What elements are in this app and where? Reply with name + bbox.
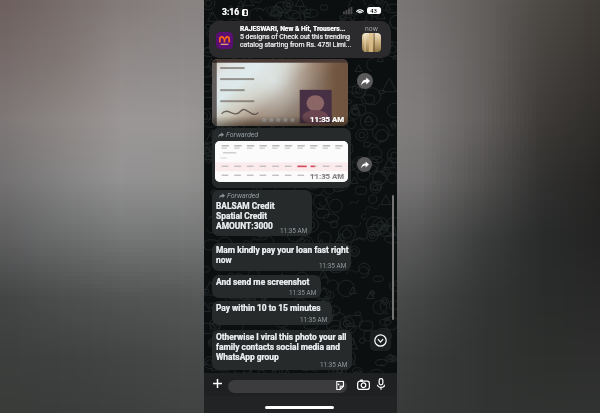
staticText: RAJESWARI, New & Hit, Trousers... (240, 25, 346, 33)
staticText: now (216, 255, 232, 265)
staticText: 11:35 AM (310, 115, 345, 124)
button[interactable]: Camera (357, 379, 370, 390)
staticText: 11:35 AM (320, 361, 348, 369)
staticText: 11:35 AM (300, 316, 328, 324)
staticText: 11:35 AM (280, 227, 308, 235)
staticText: 43 (370, 7, 378, 14)
staticText: Otherwise I viral this photo your all (216, 332, 347, 342)
button[interactable]: Attach (213, 379, 222, 388)
button[interactable]: Forwarded (212, 190, 312, 236)
button[interactable]: Mam kindly pay your loan fast right (212, 243, 351, 271)
staticText: AMOUNT:3000 (216, 221, 273, 231)
button[interactable]: Forwarded (212, 128, 351, 188)
staticText: Spatial Credit (216, 211, 268, 221)
staticText: 11:35 AM (319, 262, 347, 270)
staticText: WhatsApp group (216, 352, 279, 362)
button[interactable]: And send me screenshot (212, 275, 321, 298)
button[interactable]: Photo message (212, 59, 348, 126)
button[interactable]: Message (228, 380, 347, 393)
button[interactable]: Scroll to bottom (370, 330, 391, 351)
button[interactable]: Voice message (377, 378, 385, 390)
staticText: 11:35 AM (310, 172, 345, 181)
staticText: Forwarded (227, 192, 260, 200)
staticText: family contacts social media and (216, 342, 340, 352)
button[interactable]: Pay within 10 to 15 minutes (212, 301, 332, 325)
staticText: And send me screenshot (216, 277, 310, 287)
staticText: 3:16 (222, 7, 240, 17)
staticText: Forwarded (226, 131, 259, 139)
staticText: Mam kindly pay your loan fast right (216, 245, 349, 255)
button[interactable]: Sticker (335, 381, 344, 390)
staticText: BALSAM Credit (216, 201, 275, 211)
button[interactable]: Otherwise I viral this photo your all (212, 330, 352, 370)
button[interactable]: RAJESWARI, New & Hit, Trousers... (209, 21, 391, 58)
staticText: 11:35 AM (289, 289, 317, 297)
staticText: catalog starting from Rs. 475! Limi... (240, 41, 352, 49)
staticText: Pay within 10 to 15 minutes (216, 303, 321, 313)
staticText: now (365, 25, 378, 33)
button[interactable]: Forward (357, 73, 373, 89)
staticText: 5 designs of Check out this trending (240, 33, 350, 41)
button[interactable]: Forward (357, 157, 372, 172)
